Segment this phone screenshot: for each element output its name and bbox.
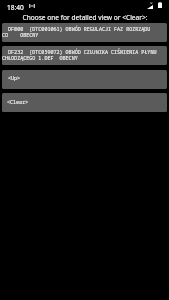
staticText: 18:40: [7, 3, 24, 12]
staticText: CO OBECNY: [2, 32, 39, 39]
staticText: <Up>: [8, 75, 21, 82]
staticText: CHŁODZĄCEGO 1.DEF OBECNY: [2, 55, 78, 62]
button[interactable]: DF000 (DTC001061) OBWÓD REGULACJI FAZ RO…: [2, 23, 167, 42]
button[interactable]: <Up>: [2, 70, 167, 89]
button[interactable]: <Clear>: [2, 93, 167, 112]
staticText: DF232 (DTC059072) OBWÓD CZUJNIKA CIŚNIEN…: [2, 49, 157, 56]
staticText: Choose one for detailed view or <Clear>:: [22, 13, 148, 22]
staticText: DF000 (DTC001061) OBWÓD REGULACJI FAZ RO…: [2, 26, 151, 33]
staticText: <Clear>: [7, 99, 29, 106]
button[interactable]: DF232 (DTC059072) OBWÓD CZUJNIKA CIŚNIEN…: [2, 46, 167, 65]
